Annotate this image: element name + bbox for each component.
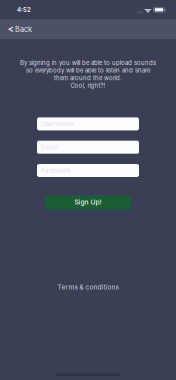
button[interactable]: Sign Up!: [45, 195, 131, 209]
staticText: Back: [15, 25, 32, 34]
staticText: Sign Up!: [74, 198, 101, 206]
button[interactable]: Password: [37, 164, 139, 177]
staticText: Password: [41, 167, 70, 174]
button[interactable]: Back: [0, 19, 42, 39]
button[interactable]: Username: [37, 117, 139, 130]
staticText: Username: [41, 120, 74, 128]
staticText: 4:52: [17, 6, 31, 13]
staticText: By signing in you will be able to upload…: [20, 59, 156, 67]
staticText: Email: [41, 143, 59, 151]
staticText: them around the world.: [54, 74, 122, 82]
staticText: Cool, right?!: [70, 82, 105, 89]
staticText: Terms & conditions: [57, 283, 118, 291]
button[interactable]: Terms & conditions: [49, 278, 126, 296]
staticText: so everybody will be able to listen and …: [26, 67, 150, 74]
button[interactable]: Email: [37, 141, 139, 154]
